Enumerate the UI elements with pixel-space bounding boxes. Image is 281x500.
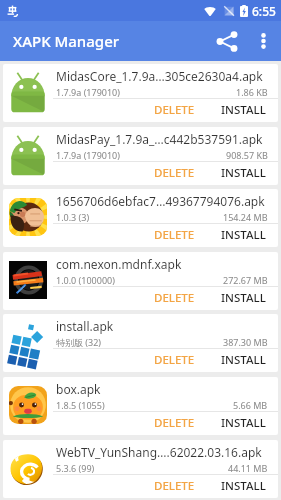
staticText: DELETE <box>154 165 195 181</box>
staticText: 908.57 KB <box>226 149 268 161</box>
button[interactable]: INSTALL <box>213 287 274 309</box>
staticText: DELETE <box>154 290 195 306</box>
staticText: install.apk <box>56 318 114 334</box>
staticText: DELETE <box>154 478 195 494</box>
staticText: INSTALL <box>221 290 266 306</box>
staticText: 1.8.5 (1055) <box>56 399 105 411</box>
staticText: INSTALL <box>221 102 266 118</box>
staticText: INSTALL <box>221 165 266 181</box>
staticText: 1.7.9a (179010) <box>56 86 120 98</box>
button[interactable]: INSTALL <box>213 412 274 434</box>
button[interactable]: box.apk <box>3 377 278 435</box>
staticText: 1656706d6ebfac7…49367794076.apk <box>56 193 265 209</box>
staticText: 5.3.6 (99) <box>56 462 95 474</box>
staticText: MidasPay_1.7.9a_…c442b537591.apk <box>56 131 263 147</box>
button[interactable]: 1656706d6ebfac7…49367794076.apk <box>3 189 278 247</box>
staticText: 154.24 MB <box>223 211 268 223</box>
staticText: 5.66 MB <box>233 399 268 411</box>
staticText: DELETE <box>154 102 195 118</box>
staticText: INSTALL <box>221 478 266 494</box>
staticText: 44.11 MB <box>228 462 268 474</box>
button[interactable]: INSTALL <box>213 475 274 497</box>
staticText: 6:55 <box>252 3 276 19</box>
staticText: 1.0.0 (100000) <box>56 274 115 286</box>
button[interactable]: INSTALL <box>213 224 274 246</box>
staticText: 1.86 KB <box>236 86 268 98</box>
staticText: INSTALL <box>221 352 266 368</box>
staticText: 1.0.3 (3) <box>56 211 90 223</box>
button[interactable]: Share <box>207 21 247 61</box>
button[interactable]: DELETE <box>146 224 203 246</box>
button[interactable]: MidasPay_1.7.9a_…c442b537591.apk <box>3 127 278 185</box>
staticText: 1.7.9a (179010) <box>56 149 120 161</box>
staticText: 387.30 MB <box>223 336 268 348</box>
staticText: XAPK Manager <box>13 31 120 51</box>
button[interactable]: DELETE <box>146 287 203 309</box>
staticText: WebTV_YunShang….62022.03.16.apk <box>56 444 262 460</box>
button[interactable]: DELETE <box>146 349 203 371</box>
staticText: DELETE <box>154 227 195 243</box>
button[interactable]: DELETE <box>146 475 203 497</box>
staticText: com.nexon.mdnf.xapk <box>56 256 182 272</box>
staticText: 272.67 MB <box>223 274 268 286</box>
button[interactable]: DELETE <box>146 162 203 184</box>
button[interactable]: DELETE <box>146 99 203 121</box>
button[interactable]: INSTALL <box>213 99 274 121</box>
button[interactable]: MidasCore_1.7.9a…305ce2630a4.apk <box>3 64 278 122</box>
button[interactable]: More options <box>247 21 279 61</box>
staticText: 特别版 (32) <box>56 336 102 348</box>
staticText: DELETE <box>154 415 195 431</box>
button[interactable]: com.nexon.mdnf.xapk <box>3 252 278 310</box>
button[interactable]: DELETE <box>146 412 203 434</box>
staticText: INSTALL <box>221 415 266 431</box>
button[interactable]: INSTALL <box>213 162 274 184</box>
staticText: DELETE <box>154 352 195 368</box>
button[interactable]: WebTV_YunShang….62022.03.16.apk <box>3 440 278 498</box>
button[interactable]: INSTALL <box>213 349 274 371</box>
staticText: INSTALL <box>221 227 266 243</box>
staticText: box.apk <box>56 381 101 397</box>
button[interactable]: install.apk <box>3 314 278 372</box>
staticText: MidasCore_1.7.9a…305ce2630a4.apk <box>56 68 263 84</box>
